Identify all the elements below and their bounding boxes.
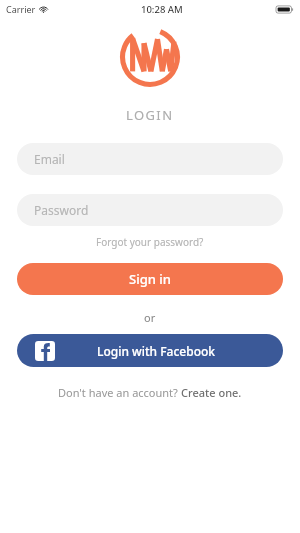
- button[interactable]: Facebook: [17, 334, 283, 367]
- other: Facebook: [35, 341, 55, 361]
- staticText: Login with Facebook: [97, 343, 216, 359]
- button[interactable]: Password: [17, 194, 283, 226]
- button[interactable]: Sign in: [17, 263, 283, 295]
- staticText: Password: [34, 202, 89, 218]
- staticText: Email: [34, 151, 65, 167]
- staticText: Sign in: [129, 270, 171, 288]
- staticText: LOGIN: [126, 106, 174, 124]
- button[interactable]: Don't have an account?: [0, 385, 300, 400]
- staticText: Forgot your password?: [96, 235, 204, 249]
- staticText: Carrier: [6, 3, 36, 15]
- staticText: Don't have an account?: [58, 385, 181, 400]
- staticText: or: [144, 310, 156, 325]
- button[interactable]: Email: [17, 143, 283, 175]
- staticText: Create one.: [181, 385, 242, 400]
- button[interactable]: Forgot your password?: [0, 235, 300, 249]
- other: NVW logo: [120, 27, 180, 87]
- staticText: 10:28 AM: [141, 3, 183, 16]
